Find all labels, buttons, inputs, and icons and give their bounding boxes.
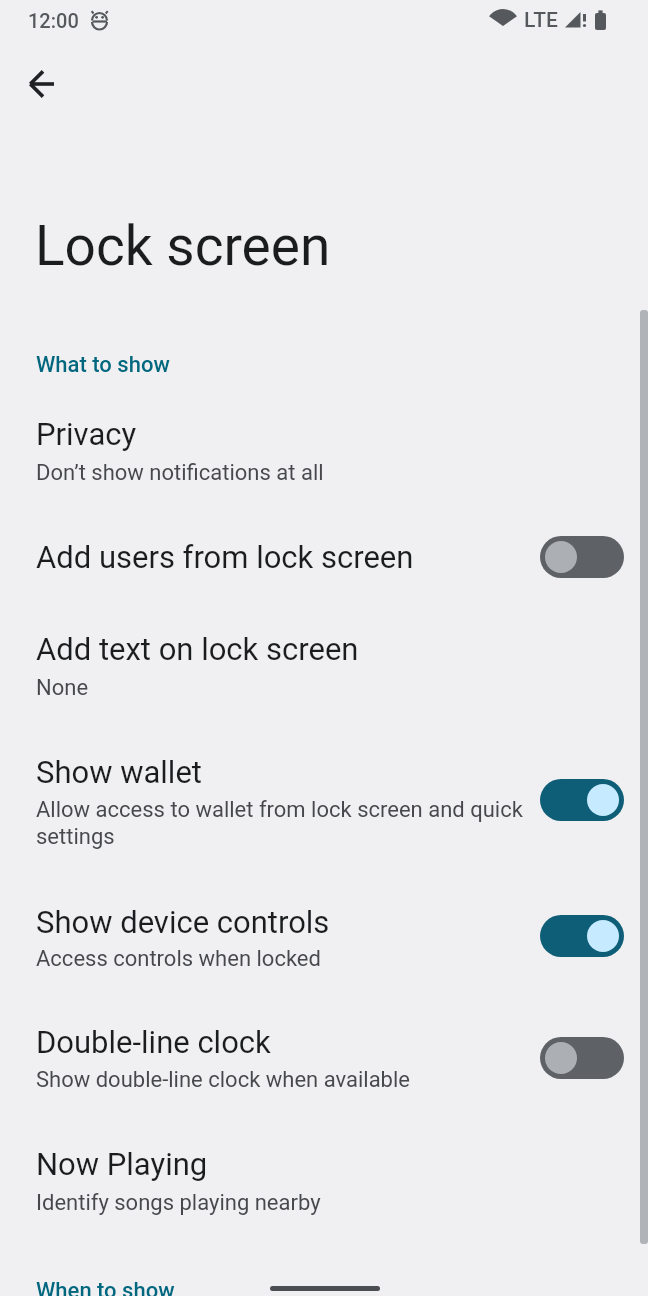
button[interactable]: Add users from lock screen [0, 508, 648, 606]
staticText: settings [36, 824, 115, 850]
staticText: Add text on lock screen [36, 631, 359, 667]
button[interactable] [540, 536, 624, 578]
button[interactable]: Show device controls [0, 864, 648, 992]
staticText: Add users from lock screen [36, 539, 414, 575]
staticText: Show double-line clock when available [36, 1067, 410, 1093]
staticText: 12:00 [28, 9, 79, 32]
staticText: When to show [36, 1278, 175, 1296]
staticText: Don’t show notifications at all [36, 460, 324, 486]
button[interactable]: Now Playing [0, 1114, 648, 1238]
staticText: Show device controls [36, 904, 330, 940]
button[interactable] [540, 1037, 624, 1079]
staticText: Lock screen [35, 214, 331, 278]
staticText: Allow access to wallet from lock screen … [36, 797, 523, 823]
staticText: Double-line clock [36, 1024, 271, 1060]
button[interactable] [540, 915, 624, 957]
button[interactable] [540, 779, 624, 821]
button[interactable] [22, 64, 62, 104]
staticText: What to show [36, 352, 170, 378]
button[interactable]: Show wallet [0, 718, 648, 864]
staticText: LTE [524, 8, 558, 33]
staticText: Now Playing [36, 1146, 208, 1182]
button[interactable]: Double-line clock [0, 992, 648, 1114]
button[interactable]: Add text on lock screen [0, 606, 648, 718]
staticText: Identify songs playing nearby [36, 1190, 321, 1216]
staticText: Privacy [36, 416, 137, 452]
staticText: None [36, 675, 89, 701]
staticText: Show wallet [36, 754, 202, 790]
button[interactable]: Privacy [0, 396, 648, 508]
staticText: Access controls when locked [36, 946, 321, 972]
